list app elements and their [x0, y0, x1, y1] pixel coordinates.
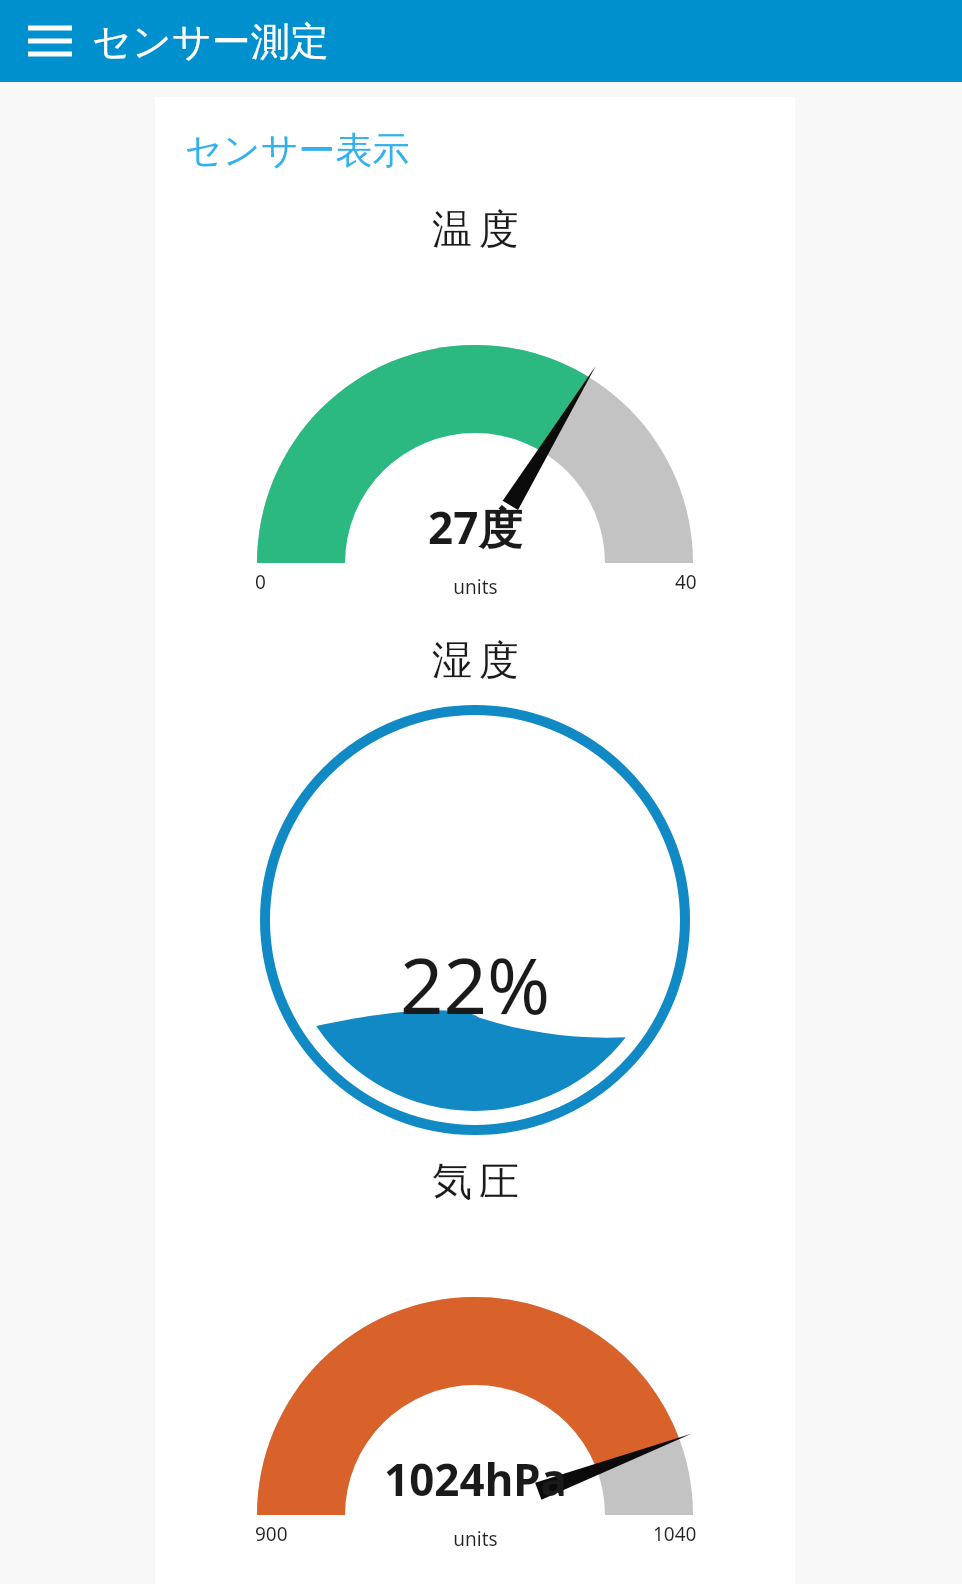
staticText: センサー測定: [92, 17, 329, 66]
staticText: 0: [255, 569, 266, 595]
button[interactable]: 気 圧: [155, 1152, 795, 1555]
staticText: 1040: [653, 1521, 697, 1547]
staticText: センサー表示: [185, 127, 410, 174]
staticText: 気 圧: [432, 1152, 519, 1207]
staticText: 900: [255, 1521, 288, 1547]
staticText: 1024hPa: [384, 1449, 567, 1509]
staticText: 温 度: [432, 200, 519, 255]
button[interactable]: 温 度: [155, 200, 795, 603]
staticText: 湿 度: [432, 631, 519, 686]
staticText: units: [453, 1526, 498, 1552]
staticText: 27度: [428, 497, 523, 557]
button[interactable]: 湿 度: [155, 631, 795, 1140]
staticText: units: [453, 574, 498, 600]
button[interactable]: Menu: [22, 13, 78, 69]
staticText: 22%: [400, 933, 551, 1037]
staticText: 40: [675, 569, 697, 595]
